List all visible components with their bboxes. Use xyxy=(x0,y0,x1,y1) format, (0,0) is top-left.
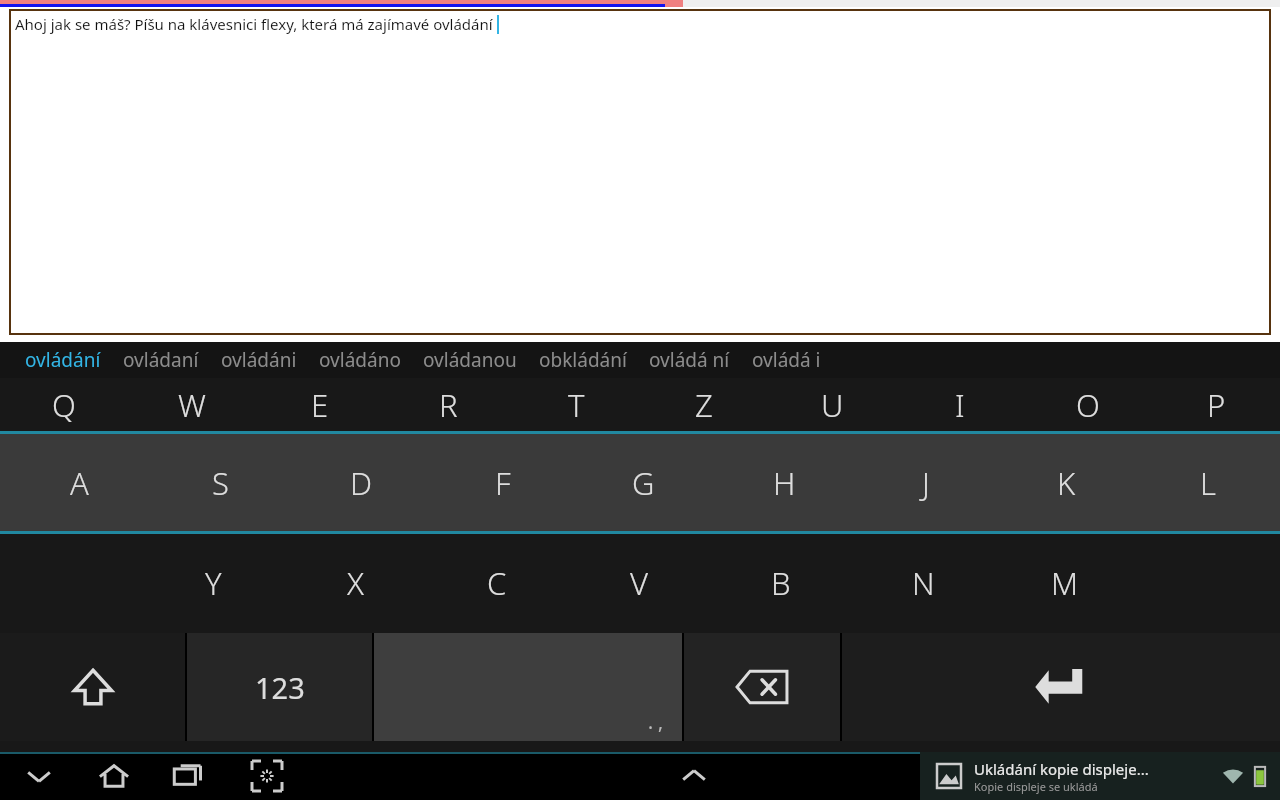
button[interactable]: H xyxy=(714,434,855,531)
button[interactable]: V xyxy=(568,534,710,631)
button[interactable]: Q xyxy=(0,378,128,431)
button[interactable]: ovládáni xyxy=(210,344,308,376)
staticText: Z xyxy=(695,384,713,426)
button[interactable]: Shift xyxy=(0,633,185,741)
button[interactable]: Screenshot xyxy=(228,752,306,800)
staticText: . , xyxy=(648,709,664,735)
staticText: ovládáni xyxy=(221,347,297,373)
button[interactable]: ovládanou xyxy=(412,344,528,376)
button[interactable]: Y xyxy=(142,534,284,631)
button[interactable]: I xyxy=(896,378,1024,431)
staticText: L xyxy=(1200,462,1216,504)
button[interactable]: obkládání xyxy=(528,344,638,376)
staticText: X xyxy=(347,562,364,604)
staticText: I xyxy=(955,384,965,426)
staticText: ovládanou xyxy=(423,347,517,373)
staticText: O xyxy=(1076,384,1100,426)
staticText: E xyxy=(311,384,329,426)
staticText: M xyxy=(1051,562,1079,604)
button[interactable]: F xyxy=(432,434,573,531)
staticText: S xyxy=(212,462,229,504)
button[interactable]: K xyxy=(996,434,1137,531)
button[interactable]: Z xyxy=(640,378,768,431)
button[interactable]: S xyxy=(150,434,291,531)
button[interactable]: P xyxy=(1152,378,1280,431)
button[interactable]: 123 xyxy=(187,633,372,741)
button[interactable]: W xyxy=(128,378,256,431)
staticText: ovládá ní xyxy=(649,347,730,373)
staticText: R xyxy=(439,384,458,426)
staticText: W xyxy=(178,384,206,426)
button[interactable]: Expand xyxy=(634,752,754,800)
button[interactable]: G xyxy=(573,434,714,531)
button[interactable]: J xyxy=(855,434,996,531)
button[interactable]: E xyxy=(256,378,384,431)
button[interactable]: B xyxy=(710,534,852,631)
button[interactable]: Enter xyxy=(842,633,1280,741)
staticText: N xyxy=(912,562,935,604)
staticText: A xyxy=(70,462,89,504)
button[interactable]: C xyxy=(426,534,568,631)
staticText: ovládáno xyxy=(319,347,401,373)
staticText: Kopie displeje se ukládá xyxy=(974,779,1098,794)
button[interactable]: D xyxy=(291,434,432,531)
staticText: H xyxy=(773,462,796,504)
button[interactable]: ovládá ní xyxy=(638,344,741,376)
button[interactable]: ovládání xyxy=(14,344,112,376)
button[interactable]: Home xyxy=(78,752,150,800)
button[interactable]: O xyxy=(1024,378,1152,431)
staticText: K xyxy=(1057,462,1076,504)
button[interactable]: Ahoj jak se máš? Píšu na klávesnici flex… xyxy=(9,9,1271,335)
staticText: Y xyxy=(205,562,222,604)
staticText: T xyxy=(568,384,585,426)
button[interactable]: ovládá i xyxy=(741,344,832,376)
staticText: obkládání xyxy=(539,347,627,373)
staticText: Ukládání kopie displeje... xyxy=(974,759,1149,779)
button[interactable]: A xyxy=(8,434,150,531)
button[interactable]: Hide keyboard xyxy=(0,752,78,800)
staticText: C xyxy=(487,562,507,604)
button[interactable]: T xyxy=(512,378,640,431)
staticText: P xyxy=(1207,384,1226,426)
staticText: Ahoj jak se máš? Píšu na klávesnici flex… xyxy=(15,14,493,34)
button[interactable]: N xyxy=(852,534,994,631)
button[interactable]: ovládaní xyxy=(112,344,210,376)
button[interactable]: X xyxy=(284,534,426,631)
button[interactable]: R xyxy=(384,378,512,431)
staticText: V xyxy=(630,562,649,604)
button[interactable]: L xyxy=(1137,434,1278,531)
button[interactable]: Recent apps xyxy=(150,752,228,800)
staticText: U xyxy=(821,384,844,426)
button[interactable]: M xyxy=(994,534,1136,631)
staticText: J xyxy=(922,462,930,504)
staticText: ovládá i xyxy=(752,347,821,373)
staticText: ovládaní xyxy=(123,347,199,373)
staticText: 123 xyxy=(255,668,305,707)
button[interactable]: ovládáno xyxy=(308,344,412,376)
staticText: G xyxy=(632,462,655,504)
staticText: B xyxy=(771,562,791,604)
staticText: Q xyxy=(52,384,76,426)
button[interactable]: Backspace xyxy=(684,633,840,741)
button[interactable]: Ukládání kopie displeje... xyxy=(920,752,1280,800)
button[interactable]: U xyxy=(768,378,896,431)
staticText: F xyxy=(495,462,511,504)
staticText: D xyxy=(350,462,373,504)
staticText: ovládání xyxy=(25,347,101,373)
